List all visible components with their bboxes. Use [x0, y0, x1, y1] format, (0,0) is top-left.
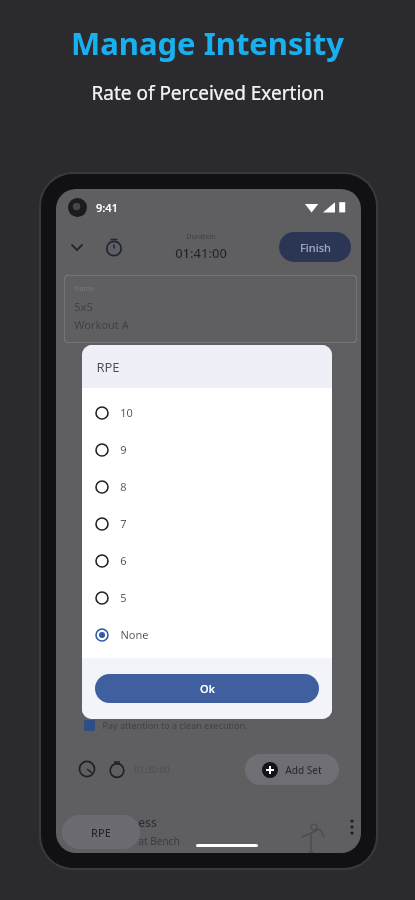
- staticText: 9:41: [96, 200, 118, 215]
- staticText: 8: [120, 479, 127, 494]
- staticText: 9: [120, 442, 127, 457]
- button[interactable]: 10: [82, 394, 332, 431]
- button[interactable]: 9: [82, 431, 332, 468]
- staticText: Pay attention to a clean execution.: [102, 719, 248, 731]
- button[interactable]: Rest timer: [108, 760, 126, 778]
- staticText: Workout A: [74, 317, 129, 332]
- button[interactable]: 6: [82, 542, 332, 579]
- button[interactable]: 7: [82, 505, 332, 542]
- staticText: Rate of Perceived Exertion: [91, 80, 325, 106]
- other: Exercise: [294, 817, 328, 851]
- staticText: Duration: [186, 232, 216, 242]
- staticText: ess: [138, 814, 157, 830]
- staticText: 01:30:00: [134, 763, 170, 775]
- button[interactable]: RPE: [62, 815, 140, 849]
- staticText: 5x5: [74, 299, 93, 314]
- button[interactable]: 8: [82, 468, 332, 505]
- button[interactable]: None: [82, 616, 332, 653]
- button[interactable]: Restore: [78, 760, 96, 778]
- staticText: None: [120, 627, 149, 642]
- staticText: 5: [120, 590, 127, 605]
- button[interactable]: 5: [82, 579, 332, 616]
- staticText: Manage Intensity: [71, 22, 344, 64]
- button[interactable]: Ok: [95, 674, 319, 703]
- staticText: Name: [74, 284, 94, 294]
- staticText: 7: [120, 516, 127, 531]
- staticText: 10: [120, 405, 133, 420]
- staticText: RPE: [91, 825, 111, 840]
- staticText: Add Set: [285, 763, 322, 777]
- button[interactable]: Finish: [279, 232, 351, 262]
- button[interactable]: More options: [344, 819, 360, 835]
- staticText: 01:41:00: [175, 244, 227, 262]
- staticText: RPE: [96, 358, 120, 376]
- button[interactable]: Add Set: [245, 754, 339, 785]
- button[interactable]: Timer: [104, 237, 124, 257]
- staticText: 6: [120, 553, 127, 568]
- staticText: Ok: [200, 681, 215, 696]
- staticText: at Bench: [138, 834, 180, 848]
- button[interactable]: Collapse: [66, 236, 88, 258]
- staticText: Finish: [300, 240, 331, 255]
